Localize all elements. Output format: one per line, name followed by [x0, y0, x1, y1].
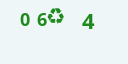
staticText: 4	[82, 5, 95, 35]
staticText: 6	[37, 7, 48, 32]
staticText: 0	[20, 7, 31, 32]
staticText: ♻	[46, 4, 66, 30]
